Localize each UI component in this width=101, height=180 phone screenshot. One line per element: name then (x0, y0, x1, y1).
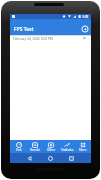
staticText: Test (16, 148, 22, 152)
button[interactable]: Statistics (59, 140, 75, 153)
staticText: Results (30, 148, 41, 152)
button[interactable] (48, 156, 53, 161)
button[interactable]: Test (10, 140, 27, 153)
staticText: More (79, 148, 87, 152)
button[interactable]: Other (43, 140, 59, 153)
button[interactable]: Results (27, 140, 43, 153)
staticText: February 24, 2045 9:02 PM (13, 37, 53, 41)
staticText: Statistics (61, 148, 74, 152)
button[interactable] (81, 25, 89, 33)
staticText: Other (47, 148, 56, 152)
button[interactable] (27, 156, 32, 161)
staticText: 3:08 (82, 15, 89, 19)
button[interactable] (69, 156, 74, 161)
button[interactable]: February 24, 2045 9:02 PM (10, 35, 91, 44)
button[interactable]: More (75, 140, 91, 153)
staticText: FPS Test (14, 26, 34, 33)
